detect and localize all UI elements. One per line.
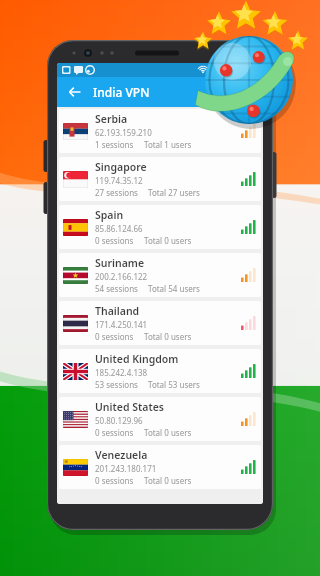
staticText: 53 sessions	[95, 379, 138, 390]
staticText: 119.74.35.12	[95, 175, 143, 186]
staticText: Venezuela	[95, 448, 148, 462]
staticText: Thailand	[95, 304, 140, 318]
staticText: Total 54 users	[148, 283, 200, 294]
button[interactable]: Singapore	[59, 157, 261, 201]
staticText: 0 sessions	[95, 427, 134, 438]
staticText: 0 sessions	[95, 235, 134, 246]
staticText: Singapore	[95, 160, 147, 174]
staticText: 0 sessions	[95, 331, 134, 342]
staticText: United Kingdom	[95, 352, 179, 366]
button[interactable]: Serbia	[59, 109, 261, 153]
staticText: United States	[95, 400, 164, 414]
staticText: 27 sessions	[95, 187, 138, 198]
staticText: 54 sessions	[95, 283, 138, 294]
staticText: 0 sessions	[95, 475, 134, 486]
staticText: 201.243.180.171	[95, 463, 157, 474]
button[interactable]: Back	[63, 80, 87, 104]
staticText: 50.80.129.96	[95, 415, 143, 426]
staticText: India VPN	[93, 84, 150, 100]
staticText: Total 27 users	[148, 187, 200, 198]
staticText: 1 sessions	[95, 139, 134, 150]
button[interactable]: Venezuela	[59, 445, 261, 489]
button[interactable]: Suriname	[59, 253, 261, 297]
staticText: Serbia	[95, 112, 128, 126]
staticText: Total 0 users	[144, 331, 192, 342]
staticText: Total 53 users	[148, 379, 200, 390]
staticText: 200.2.166.122	[95, 271, 148, 282]
staticText: Total 0 users	[144, 475, 192, 486]
button[interactable]: United Kingdom	[59, 349, 261, 393]
staticText: Total 1 users	[144, 139, 192, 150]
staticText: 85.86.124.66	[95, 223, 143, 234]
button[interactable]: Thailand	[59, 301, 261, 345]
staticText: 62.193.159.210	[95, 127, 152, 138]
button[interactable]: United States	[59, 397, 261, 441]
staticText: Total 0 users	[144, 427, 192, 438]
staticText: 171.4.250.141	[95, 319, 148, 330]
staticText: Spain	[95, 208, 124, 222]
staticText: Total 0 users	[144, 235, 192, 246]
staticText: 185.242.4.138	[95, 367, 148, 378]
staticText: Suriname	[95, 256, 145, 270]
button[interactable]: Spain	[59, 205, 261, 249]
